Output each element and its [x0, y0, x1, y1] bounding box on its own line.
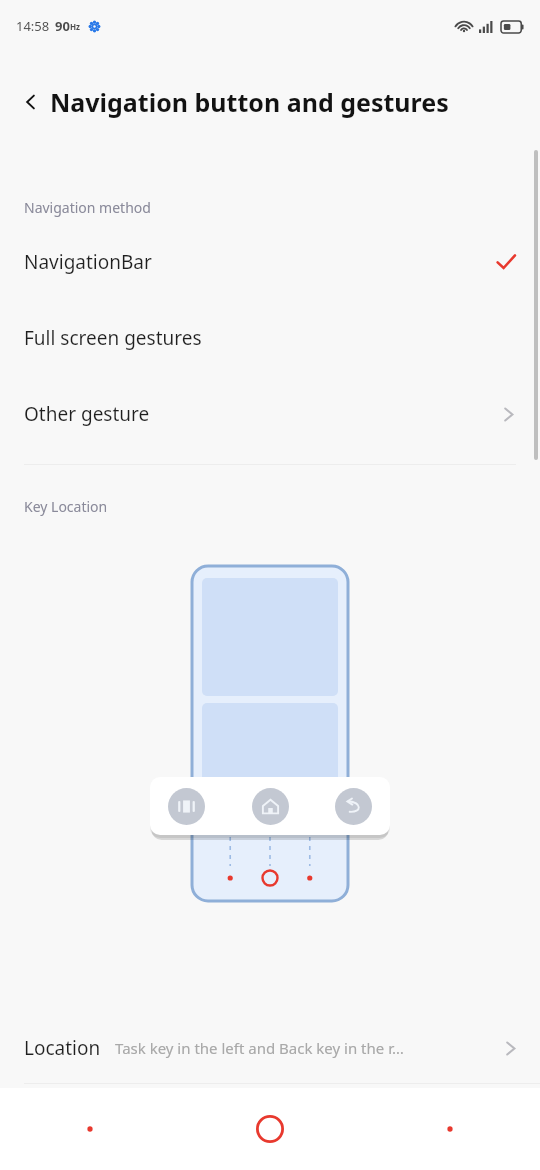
button[interactable]: NavigationBar: [0, 246, 540, 278]
button[interactable]: Full screen gestures: [0, 322, 540, 354]
staticText: NavigationBar: [24, 249, 152, 275]
staticText: Hz: [70, 21, 81, 32]
staticText: 90: [55, 17, 70, 35]
staticText: Navigation button and gestures: [50, 85, 449, 119]
staticText: Navigation method: [24, 198, 151, 217]
staticText: Location: [24, 1035, 101, 1061]
staticText: Task key in the left and Back key in the…: [115, 1038, 404, 1058]
button[interactable]: Back: [18, 89, 44, 115]
button[interactable]: Home: [252, 788, 289, 825]
button[interactable]: Recent apps: [168, 788, 205, 825]
button[interactable]: Recent apps: [0, 1088, 180, 1170]
staticText: 14:58: [16, 17, 50, 35]
button[interactable]: Location: [0, 1013, 540, 1083]
button[interactable]: Back: [360, 1088, 540, 1170]
staticText: Full screen gestures: [24, 325, 202, 351]
staticText: Key Location: [24, 497, 108, 516]
button[interactable]: Back: [335, 788, 372, 825]
button[interactable]: Other gesture: [0, 398, 540, 430]
staticText: Other gesture: [24, 401, 150, 427]
button[interactable]: Home: [180, 1088, 360, 1170]
